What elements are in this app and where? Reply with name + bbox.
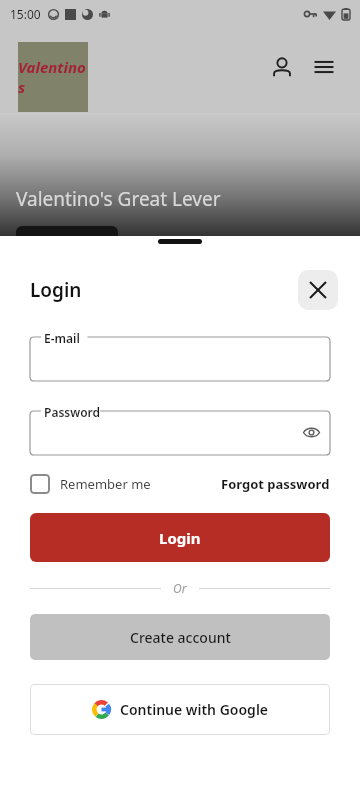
button[interactable]: Menu (304, 47, 344, 87)
button[interactable]: Login (30, 513, 330, 562)
staticText: E-mail (44, 330, 80, 346)
button[interactable]: Forgot password (221, 475, 330, 493)
button[interactable]: Create account (30, 614, 330, 660)
staticText: Remember me (60, 475, 151, 493)
button[interactable]: Remember me (30, 474, 151, 494)
staticText: Valentino's Great Lever (16, 186, 221, 212)
button[interactable] (30, 337, 330, 381)
staticText: Forgot password (221, 475, 330, 493)
staticText: Password (44, 404, 101, 420)
button[interactable]: Valentinos home (18, 42, 88, 112)
button[interactable]: Close (298, 270, 338, 310)
staticText: Or (173, 580, 187, 596)
button[interactable] (30, 411, 330, 455)
staticText: Create account (130, 628, 231, 647)
staticText: 15:00 (10, 6, 41, 22)
button[interactable]: Account (262, 47, 302, 87)
button[interactable]: Continue with Google (30, 684, 330, 735)
staticText: Valentinos (18, 57, 88, 97)
staticText: Login (159, 528, 201, 548)
staticText: Login (30, 277, 82, 303)
button[interactable]: Show password (298, 419, 324, 445)
staticText: Continue with Google (120, 700, 269, 719)
